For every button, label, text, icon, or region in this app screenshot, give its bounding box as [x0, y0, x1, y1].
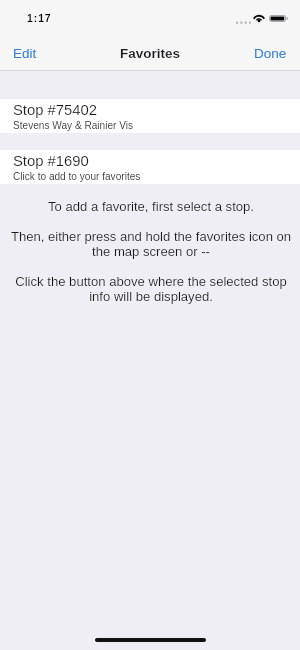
staticText: To add a favorite, first select a stop. [7, 199, 295, 214]
staticText: 1:17 [27, 13, 52, 25]
staticText: Click to add to your favorites [13, 171, 141, 182]
button[interactable]: Stop #1690 [0, 150, 300, 184]
staticText: Click the button above where the selecte… [7, 274, 295, 304]
staticText: Then, either press and hold the favorite… [7, 229, 295, 259]
button[interactable]: Edit [0, 39, 50, 68]
staticText: Stop #75402 [13, 102, 97, 119]
staticText: Favorites [120, 46, 181, 61]
button[interactable]: Done [241, 39, 300, 68]
staticText: Edit [13, 46, 37, 61]
staticText: Stevens Way & Rainier Vis [13, 120, 134, 131]
staticText: Done [254, 46, 287, 61]
button[interactable]: Stop #75402 [0, 99, 300, 133]
staticText: Stop #1690 [13, 153, 89, 170]
